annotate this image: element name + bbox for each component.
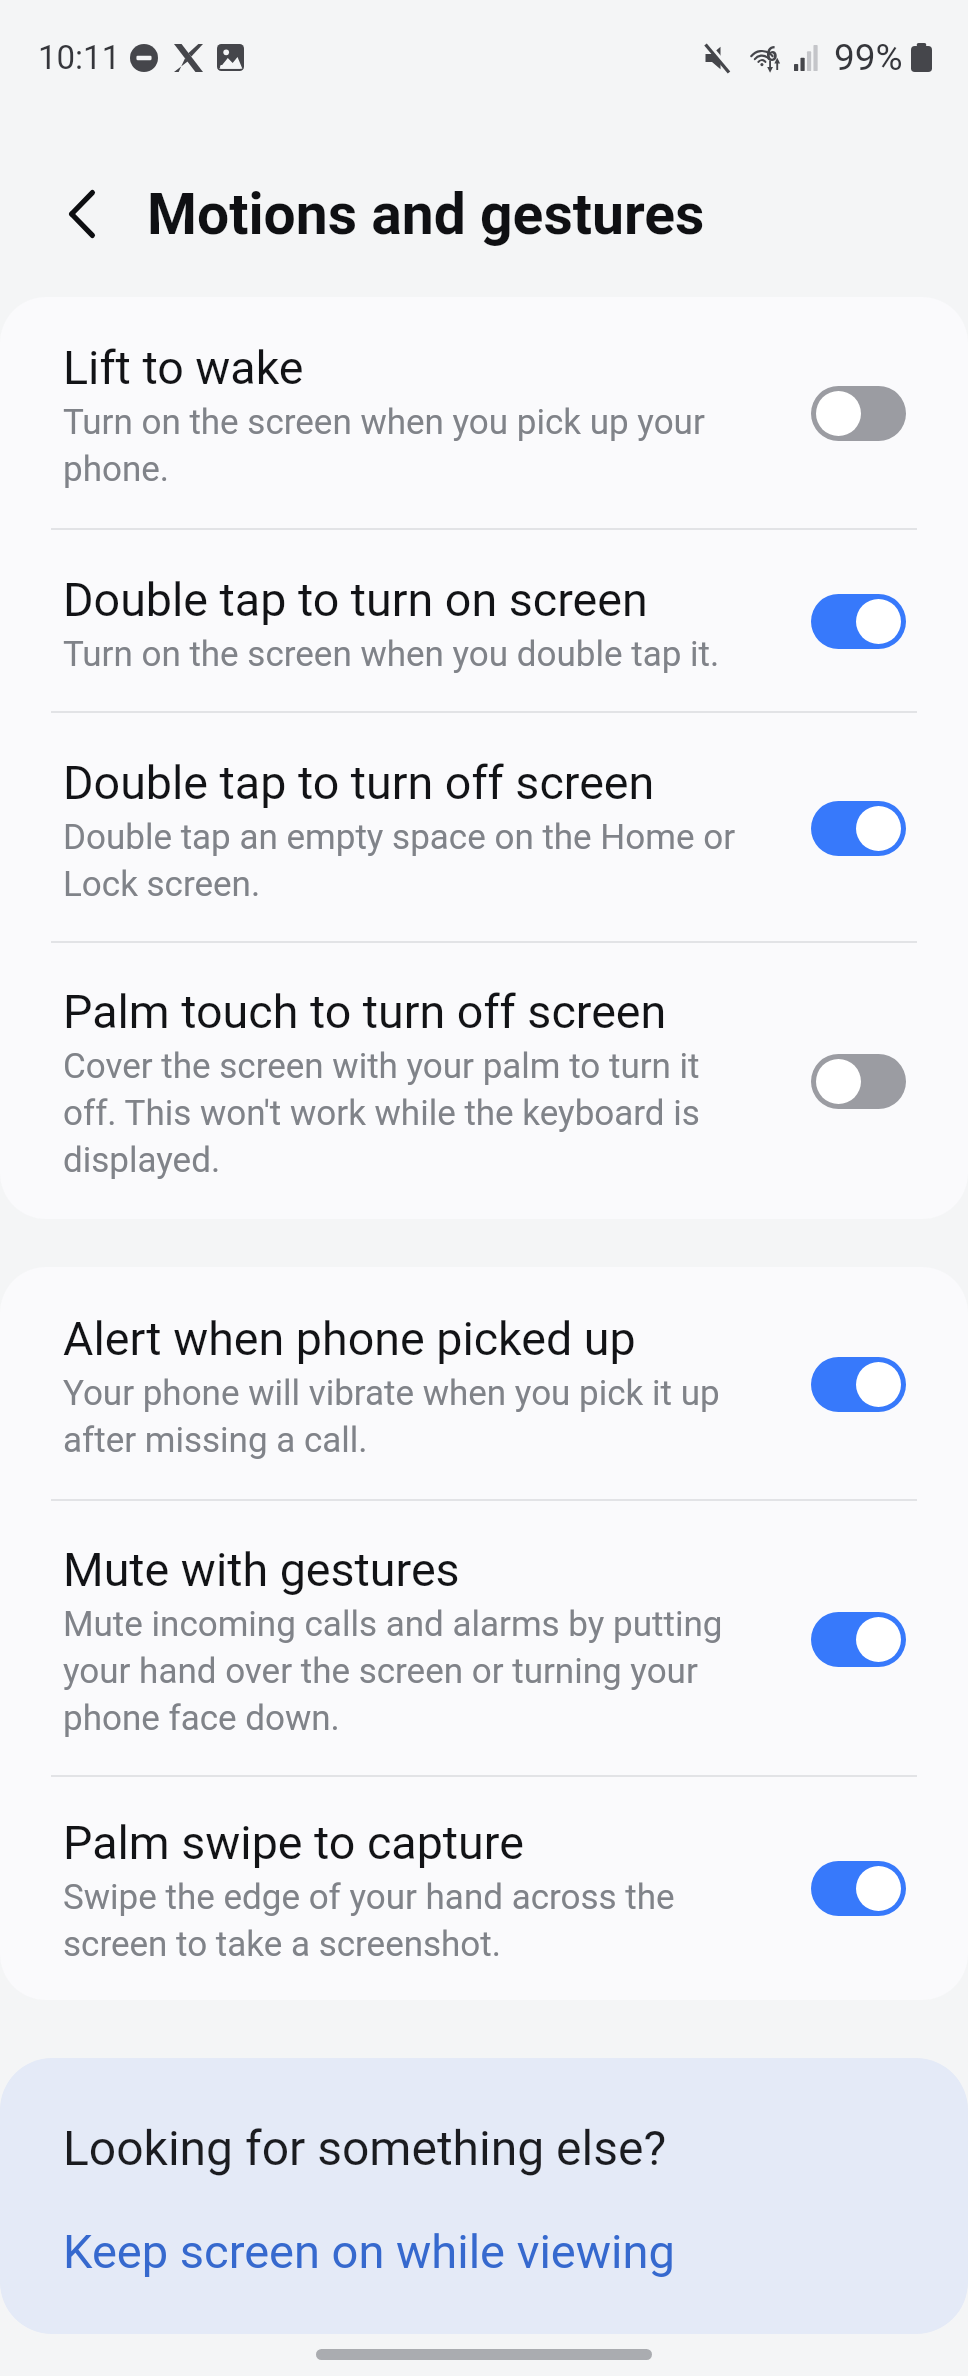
button[interactable]: Turn off: [811, 594, 906, 649]
button[interactable]: Lift to wake: [0, 297, 968, 530]
staticText: Turn on the screen when you double tap i…: [63, 634, 720, 675]
button[interactable]: Keep screen on while viewing: [0, 2224, 715, 2279]
button[interactable]: Double tap to turn off screen: [0, 713, 968, 943]
staticText: Looking for something else?: [63, 2120, 667, 2176]
button[interactable]: Turn on: [811, 386, 906, 441]
staticText: Your phone will vibrate when you pick it…: [63, 1373, 743, 1461]
staticText: 6: [766, 42, 778, 65]
staticText: Double tap to turn on screen: [63, 573, 648, 628]
button[interactable]: Turn off: [811, 1612, 906, 1667]
staticText: Palm swipe to capture: [63, 1816, 524, 1871]
staticText: Turn on the screen when you pick up your…: [63, 402, 743, 490]
staticText: Alert when phone picked up: [63, 1312, 636, 1367]
button[interactable]: Turn off: [811, 1861, 906, 1916]
button[interactable]: Turn on: [811, 1054, 906, 1109]
staticText: 10:11: [38, 38, 121, 77]
staticText: 99%: [834, 36, 903, 79]
staticText: Motions and gestures: [147, 181, 705, 248]
button[interactable]: Turn off: [811, 1357, 906, 1412]
button[interactable]: Navigate up: [41, 173, 123, 255]
staticText: Cover the screen with your palm to turn …: [63, 1046, 743, 1181]
staticText: Swipe the edge of your hand across the s…: [63, 1877, 743, 1965]
button[interactable]: Palm swipe to capture: [0, 1777, 968, 2000]
button[interactable]: Mute with gestures: [0, 1501, 968, 1777]
staticText: Mute incoming calls and alarms by puttin…: [63, 1604, 743, 1739]
staticText: Mute with gestures: [63, 1543, 460, 1598]
button[interactable]: Turn off: [811, 801, 906, 856]
button[interactable]: Palm touch to turn off screen: [0, 943, 968, 1219]
button[interactable]: Double tap to turn on screen: [0, 530, 968, 713]
staticText: Lift to wake: [63, 341, 304, 396]
button[interactable]: Alert when phone picked up: [0, 1267, 968, 1501]
staticText: Keep screen on while viewing: [63, 2224, 675, 2279]
staticText: Double tap an empty space on the Home or…: [63, 817, 743, 905]
staticText: Palm touch to turn off screen: [63, 985, 667, 1040]
staticText: Double tap to turn off screen: [63, 756, 655, 811]
